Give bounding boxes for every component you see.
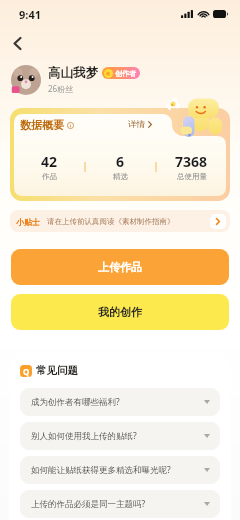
staticText: Q xyxy=(23,366,30,377)
staticText: 请在上传前认真阅读《素材制作指南》 xyxy=(47,217,175,226)
button[interactable]: 别人如何使用我上传的贴纸? xyxy=(20,422,220,450)
button[interactable]: 如何能让贴纸获得更多精选和曝光呢? xyxy=(20,456,220,484)
staticText: 详情 xyxy=(128,119,145,130)
staticText: 常见问题 xyxy=(36,364,78,377)
staticText: 7368 xyxy=(175,152,208,171)
button[interactable]: Back xyxy=(6,32,28,54)
staticText: 如何能让贴纸获得更多精选和曝光呢? xyxy=(31,464,171,476)
staticText: 小贴士 xyxy=(16,217,40,227)
staticText: 成为创作者有哪些福利? xyxy=(31,396,120,408)
staticText: 高山我梦 xyxy=(48,65,98,81)
staticText: 上传的作品必须是同一主题吗? xyxy=(31,498,146,510)
staticText: 创作者 xyxy=(115,69,136,78)
staticText: 总使用量 xyxy=(177,172,207,181)
button[interactable]: 上传作品 xyxy=(11,249,229,285)
staticText: 我的创作 xyxy=(98,305,142,319)
staticText: 6 xyxy=(116,152,125,171)
button[interactable]: 上传的作品必须是同一主题吗? xyxy=(20,490,220,518)
staticText: 别人如何使用我上传的贴纸? xyxy=(31,430,137,442)
staticText: 42 xyxy=(41,152,58,171)
staticText: 上传作品 xyxy=(98,260,142,274)
button[interactable]: 成为创作者有哪些福利? xyxy=(20,388,220,416)
staticText: 26粉丝 xyxy=(48,83,74,94)
staticText: 数据概要 xyxy=(20,118,64,132)
button[interactable]: 我的创作 xyxy=(11,294,229,330)
staticText: 9:41 xyxy=(19,7,41,22)
button[interactable]: 详情 xyxy=(128,119,152,130)
staticText: 精选 xyxy=(113,172,128,181)
staticText: 作品 xyxy=(42,172,57,181)
button[interactable]: 小贴士 xyxy=(10,210,230,232)
